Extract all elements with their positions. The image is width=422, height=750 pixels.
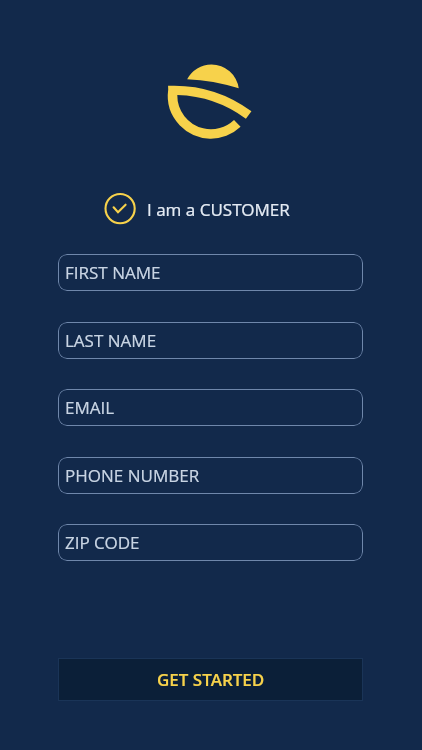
other: App logo bbox=[160, 55, 260, 150]
button[interactable]: FIRST NAME bbox=[58, 254, 363, 291]
staticText: GET STARTED bbox=[157, 668, 265, 691]
button[interactable]: LAST NAME bbox=[58, 322, 363, 359]
staticText: EMAIL bbox=[65, 396, 115, 419]
staticText: ZIP CODE bbox=[65, 531, 140, 554]
button[interactable]: EMAIL bbox=[58, 389, 363, 426]
button[interactable]: I am a CUSTOMER bbox=[103, 192, 290, 226]
staticText: LAST NAME bbox=[65, 329, 157, 352]
staticText: FIRST NAME bbox=[65, 261, 161, 284]
staticText: PHONE NUMBER bbox=[65, 464, 200, 487]
staticText: I am a CUSTOMER bbox=[147, 198, 290, 221]
button[interactable]: PHONE NUMBER bbox=[58, 457, 363, 494]
button[interactable]: GET STARTED bbox=[58, 658, 363, 701]
button[interactable]: ZIP CODE bbox=[58, 524, 363, 561]
